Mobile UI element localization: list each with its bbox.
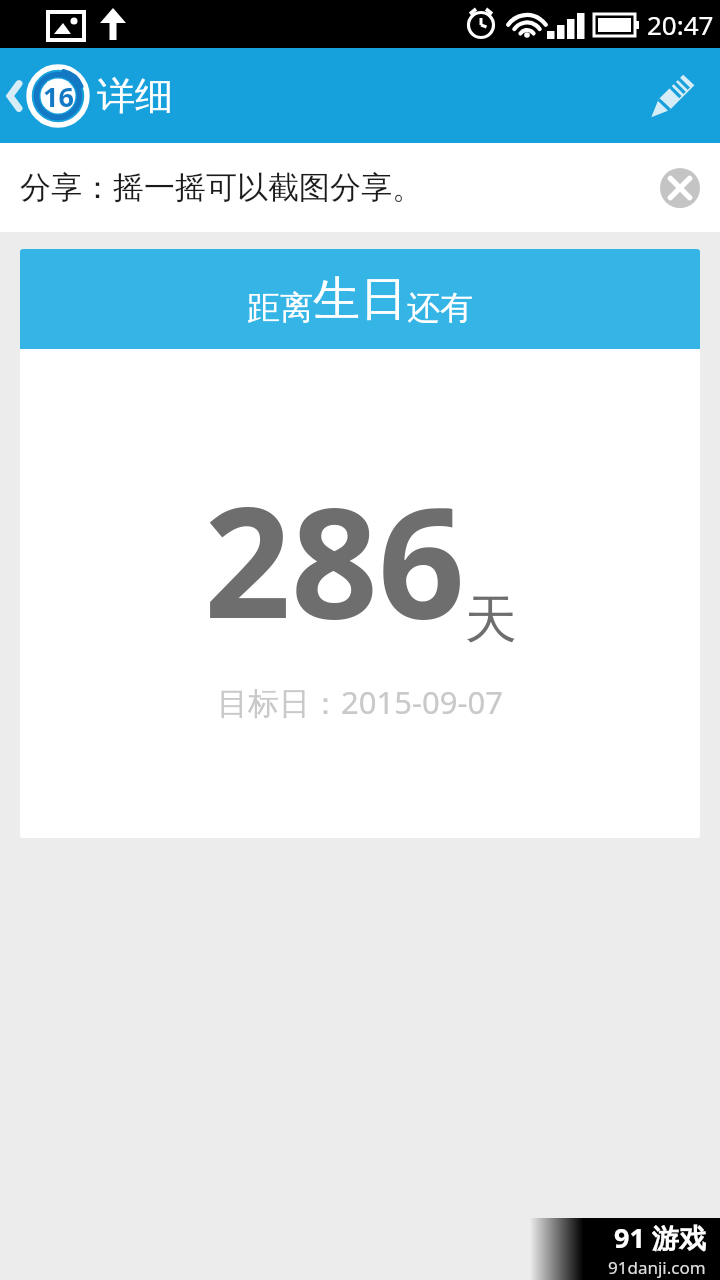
button[interactable]: 距离: [20, 249, 700, 838]
button[interactable]: Edit: [624, 48, 720, 143]
staticText: 天: [465, 587, 517, 653]
button[interactable]: Close: [657, 165, 703, 211]
staticText: 20:47: [647, 7, 714, 42]
staticText: 目标日：2015-09-07: [217, 681, 503, 723]
staticText: 还有: [407, 287, 473, 329]
staticText: 91 游戏: [614, 1219, 706, 1256]
staticText: 距离: [247, 287, 313, 329]
button[interactable]: 16: [0, 48, 181, 143]
staticText: 详细: [97, 72, 173, 120]
staticText: 生日: [313, 270, 407, 329]
staticText: 分享：摇一摇可以截图分享。: [20, 168, 423, 207]
staticText: 286: [204, 456, 465, 663]
staticText: 91danji.com: [608, 1256, 706, 1279]
staticText: 16: [43, 78, 74, 115]
